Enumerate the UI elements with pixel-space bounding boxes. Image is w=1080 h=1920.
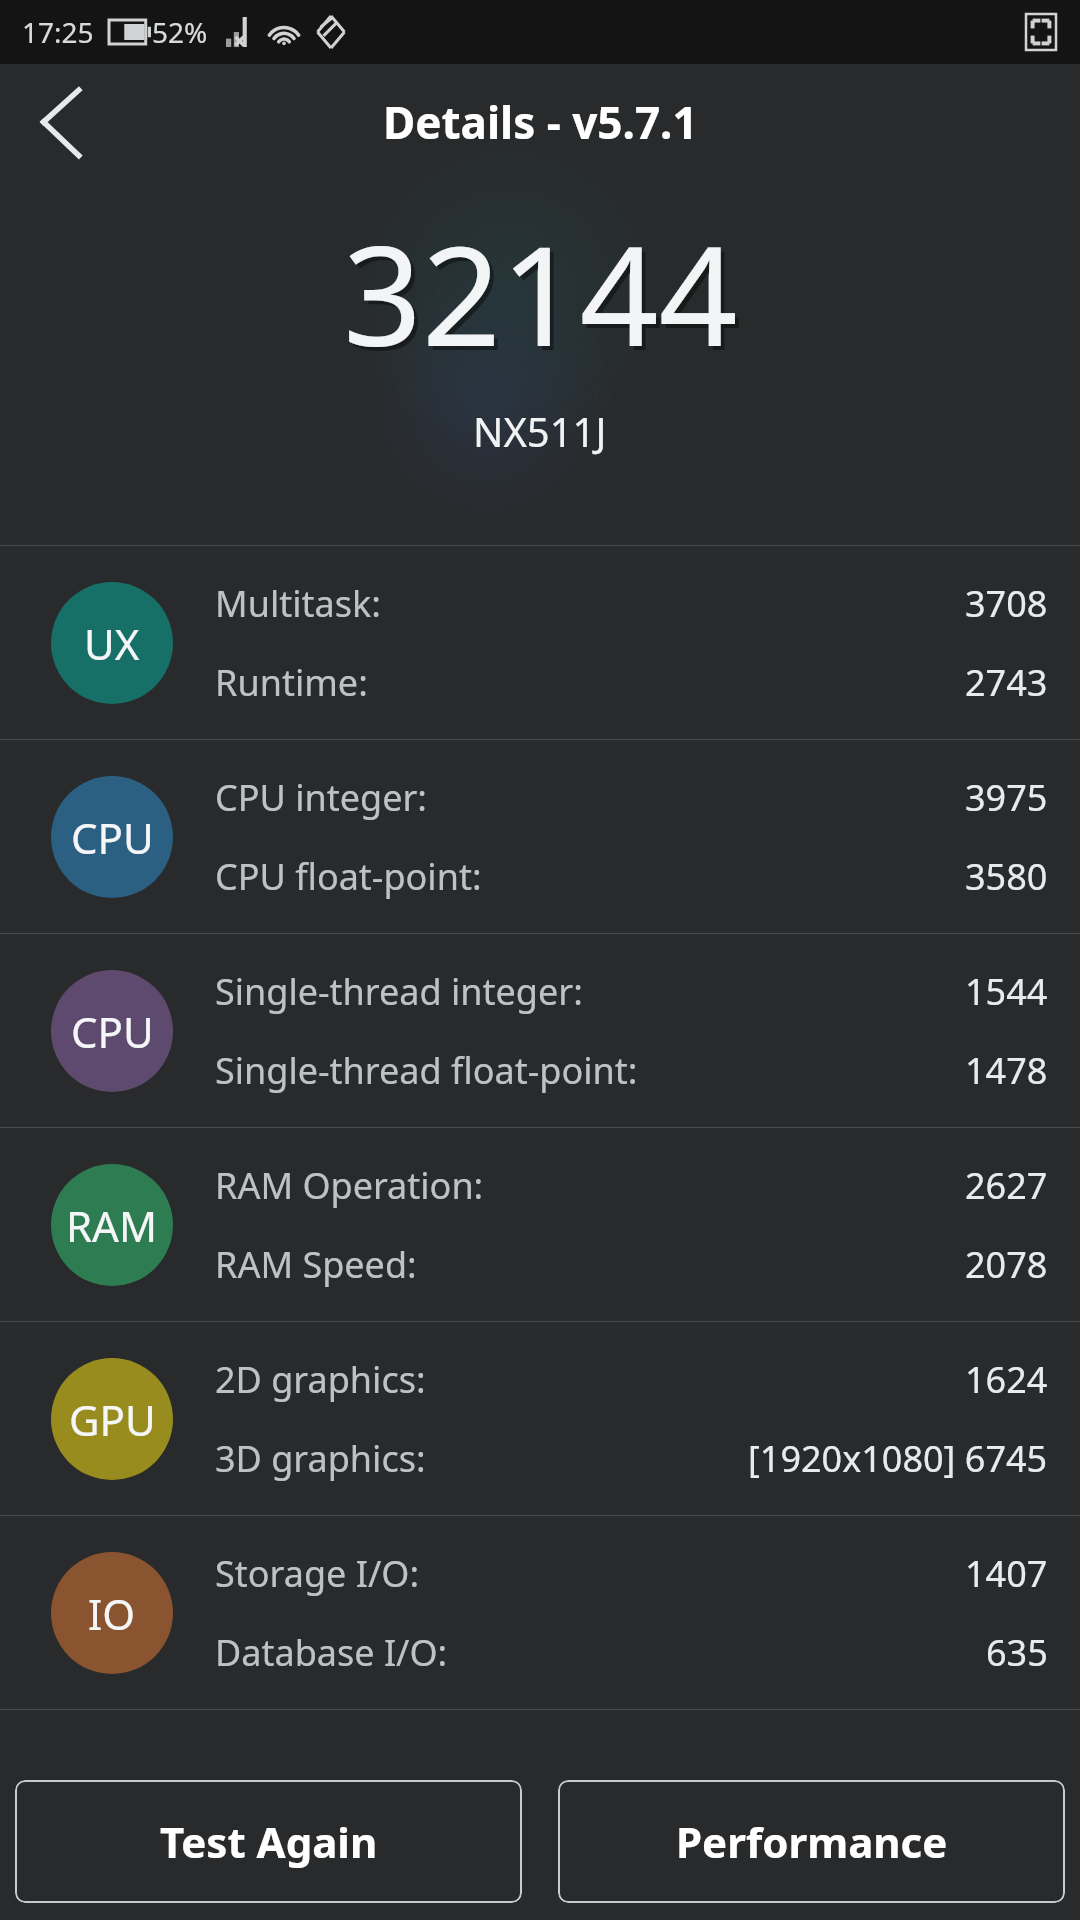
button[interactable]: Performance xyxy=(558,1780,1065,1903)
staticText: 2743 xyxy=(965,658,1048,707)
staticText: 1544 xyxy=(965,967,1048,1016)
staticText: Database I/O: xyxy=(215,1628,448,1677)
staticText: 3D graphics: xyxy=(215,1434,426,1483)
staticText: 3708 xyxy=(965,579,1048,628)
staticText: UX xyxy=(84,615,140,672)
staticText: 1478 xyxy=(965,1046,1048,1095)
staticText: Runtime: xyxy=(215,658,368,707)
staticText: 1407 xyxy=(965,1549,1048,1598)
staticText: CPU xyxy=(71,809,154,866)
button[interactable]: IO xyxy=(0,1516,1080,1709)
staticText: [1920x1080] 6745 xyxy=(748,1434,1048,1483)
staticText: IO xyxy=(88,1585,136,1642)
staticText: CPU float-point: xyxy=(215,852,482,901)
button[interactable]: RAM xyxy=(0,1128,1080,1321)
staticText: Test Again xyxy=(160,1813,378,1870)
other: Screenshot xyxy=(1026,14,1056,50)
staticText: 2627 xyxy=(965,1161,1048,1210)
button[interactable]: UX xyxy=(0,546,1080,739)
staticText: 32144 xyxy=(347,202,742,390)
staticText: 2D graphics: xyxy=(215,1355,426,1404)
button[interactable]: GPU xyxy=(0,1322,1080,1515)
staticText: 17:25 xyxy=(22,13,94,51)
staticText: 635 xyxy=(986,1628,1048,1677)
staticText: 1624 xyxy=(965,1355,1048,1404)
staticText: 52% xyxy=(152,13,208,51)
staticText: Single-thread float-point: xyxy=(215,1046,638,1095)
staticText: 3580 xyxy=(965,852,1048,901)
staticText: Single-thread integer: xyxy=(215,967,583,1016)
staticText: NX511J xyxy=(473,404,607,458)
staticText: 3975 xyxy=(965,773,1048,822)
staticText: Performance xyxy=(676,1813,948,1870)
staticText: GPU xyxy=(69,1391,156,1448)
staticText: CPU xyxy=(71,1003,154,1060)
staticText: RAM Speed: xyxy=(215,1240,417,1289)
staticText: RAM Operation: xyxy=(215,1161,484,1210)
staticText: Storage I/O: xyxy=(215,1549,420,1598)
staticText: Multitask: xyxy=(215,579,381,628)
staticText: Details - v5.7.1 xyxy=(383,92,698,152)
button[interactable]: Back xyxy=(20,80,104,164)
button[interactable]: CPU xyxy=(0,934,1080,1127)
button[interactable]: CPU xyxy=(0,740,1080,933)
staticText: CPU integer: xyxy=(215,773,428,822)
staticText: RAM xyxy=(66,1197,158,1254)
staticText: 2078 xyxy=(965,1240,1048,1289)
button[interactable]: Test Again xyxy=(15,1780,522,1903)
staticText: 32144 xyxy=(343,198,738,386)
